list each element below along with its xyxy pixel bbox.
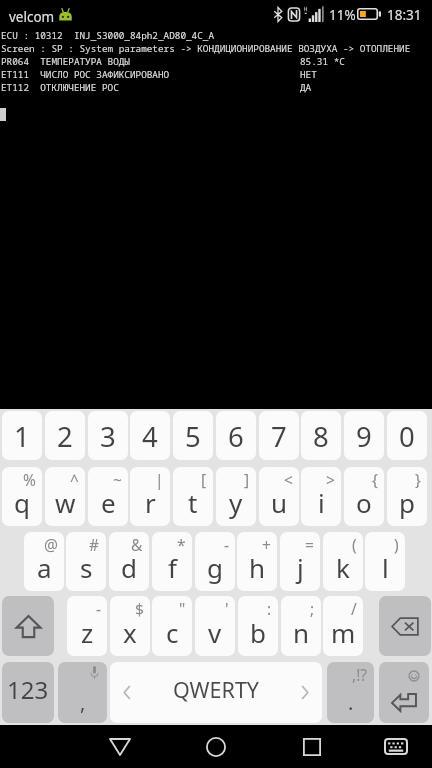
staticText: 0 (399, 418, 415, 455)
button[interactable]: d (109, 532, 149, 591)
staticText: ' (225, 598, 229, 619)
staticText: 2 (57, 418, 73, 455)
button[interactable]: j (280, 532, 320, 591)
staticText: 123 (7, 673, 49, 706)
staticText: - (224, 534, 229, 555)
staticText: QWERTY (173, 675, 260, 704)
staticText: ,!? (352, 664, 368, 685)
staticText: ~ (113, 469, 122, 490)
staticText: l (382, 550, 389, 585)
button[interactable]: b (238, 596, 278, 656)
staticText: v (208, 615, 222, 650)
staticText: % (23, 469, 36, 490)
button[interactable]: 6 (216, 411, 256, 460)
staticText: { (372, 469, 378, 490)
button[interactable]: g (195, 532, 235, 591)
button[interactable]: z (67, 596, 107, 656)
button[interactable]: s (66, 532, 106, 591)
button[interactable]: . (327, 662, 374, 723)
button[interactable]: 5 (173, 411, 213, 460)
button[interactable]: m (323, 596, 363, 656)
staticText: q (14, 485, 30, 520)
staticText: # (89, 534, 100, 555)
staticText: ] (244, 469, 250, 490)
staticText: 3 (100, 418, 116, 455)
button[interactable]: o (344, 467, 384, 526)
button[interactable]: c (152, 596, 192, 656)
button[interactable]: Home (180, 725, 252, 768)
button[interactable]: 3 (88, 411, 128, 460)
button[interactable]: Recents (276, 725, 348, 768)
staticText: h (249, 550, 266, 585)
button[interactable]: t (173, 467, 213, 526)
staticText: g (207, 550, 223, 585)
staticText: = (305, 534, 314, 555)
staticText: 1 (14, 418, 30, 455)
staticText: < (284, 469, 293, 490)
button[interactable]: x (110, 596, 150, 656)
staticText: 18:31 (387, 6, 422, 24)
staticText: x (123, 615, 137, 650)
button[interactable]: l (365, 532, 405, 591)
staticText: 11% (329, 6, 356, 24)
staticText: 9 (356, 418, 372, 455)
staticText: i (318, 485, 325, 520)
button[interactable]: n (281, 596, 321, 656)
button[interactable]: y (216, 467, 256, 526)
staticText: ( (352, 534, 357, 555)
staticText: ) (394, 534, 399, 555)
button[interactable]: e (88, 467, 128, 526)
button[interactable]: u (259, 467, 299, 526)
button[interactable]: Switch keyboard (364, 725, 428, 768)
staticText: y (229, 485, 243, 520)
button[interactable]: 4 (130, 411, 170, 460)
staticText: j (297, 550, 304, 585)
button[interactable]: p (387, 467, 427, 526)
button[interactable]: comma (58, 662, 107, 723)
staticText: ET111 ЧИСЛО РОС ЗАФИКСИРОВАНО (1, 68, 170, 81)
staticText: w (55, 485, 76, 520)
button[interactable]: i (301, 467, 341, 526)
button[interactable]: QWERTY (110, 662, 322, 723)
staticText: c (166, 615, 179, 650)
staticText: & (131, 534, 143, 555)
staticText: : (267, 598, 272, 619)
staticText: } (415, 469, 421, 490)
staticText: s (80, 550, 93, 585)
button[interactable]: shift (2, 596, 54, 656)
button[interactable]: 9 (344, 411, 384, 460)
button[interactable]: k (323, 532, 363, 591)
staticText: [ (201, 469, 207, 490)
button[interactable]: w (45, 467, 85, 526)
staticText: * (177, 534, 186, 555)
staticText: ^ (70, 469, 79, 490)
button[interactable]: f (152, 532, 192, 591)
button[interactable]: 2 (45, 411, 85, 460)
staticText: z (81, 615, 94, 650)
button[interactable]: 0 (387, 411, 427, 460)
button[interactable]: Back (84, 725, 156, 768)
staticText: $ (135, 598, 144, 619)
button[interactable]: 8 (301, 411, 341, 460)
button[interactable]: q (2, 467, 42, 526)
staticText: t (188, 485, 198, 520)
button[interactable]: 1 (2, 411, 42, 460)
staticText: 5 (185, 418, 201, 455)
staticText: n (293, 615, 310, 650)
button[interactable]: v (195, 596, 235, 656)
staticText: k (336, 550, 350, 585)
button[interactable]: 7 (259, 411, 299, 460)
staticText: 8 (313, 418, 329, 455)
button[interactable]: h (237, 532, 277, 591)
button[interactable]: enter (379, 662, 429, 723)
button[interactable]: r (130, 467, 170, 526)
button[interactable]: 123 (2, 662, 54, 723)
staticText: velcom (9, 8, 55, 26)
staticText: r (145, 485, 156, 520)
staticText: ET112 ОТКЛЮЧЕНИЕ РОС (1, 81, 119, 94)
staticText: . (348, 689, 354, 716)
staticText: ДА (300, 81, 312, 94)
button[interactable]: a (24, 532, 64, 591)
staticText: m (331, 615, 356, 650)
button[interactable]: back (379, 596, 431, 656)
